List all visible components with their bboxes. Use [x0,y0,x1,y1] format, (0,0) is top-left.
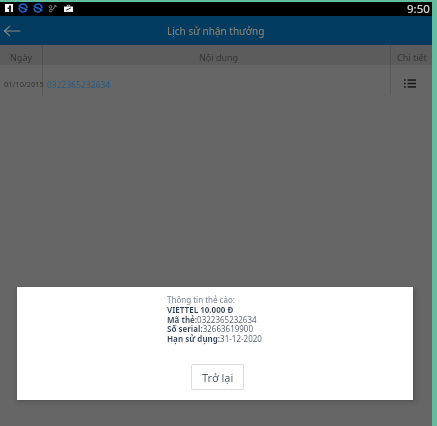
button[interactable]: Chi tiết [400,73,420,93]
staticText: Số serial:32663619900 [167,323,254,334]
staticText: VIETTEL 10.000 Đ [167,304,234,315]
button[interactable]: Back [0,19,24,43]
staticText: Thông tin thẻ cào: [167,294,235,305]
button[interactable]: Trở lại [191,364,244,390]
staticText: Lịch sử nhận thưởng [167,24,265,38]
staticText: Ngày [10,51,33,63]
staticText: Hạn sử dụng:31-12-2020 [167,333,262,344]
staticText: Trở lại [202,370,234,385]
staticText: 01/10/2015 [4,79,44,89]
staticText: Nội dung [199,51,239,63]
staticText: 0322365232634 [47,79,111,91]
button[interactable]: 0322365232634 [43,73,115,93]
staticText: Mã thẻ:0322365232634 [167,314,257,325]
staticText: Chi tiết [397,51,427,63]
staticText: 9:50 [407,1,430,17]
